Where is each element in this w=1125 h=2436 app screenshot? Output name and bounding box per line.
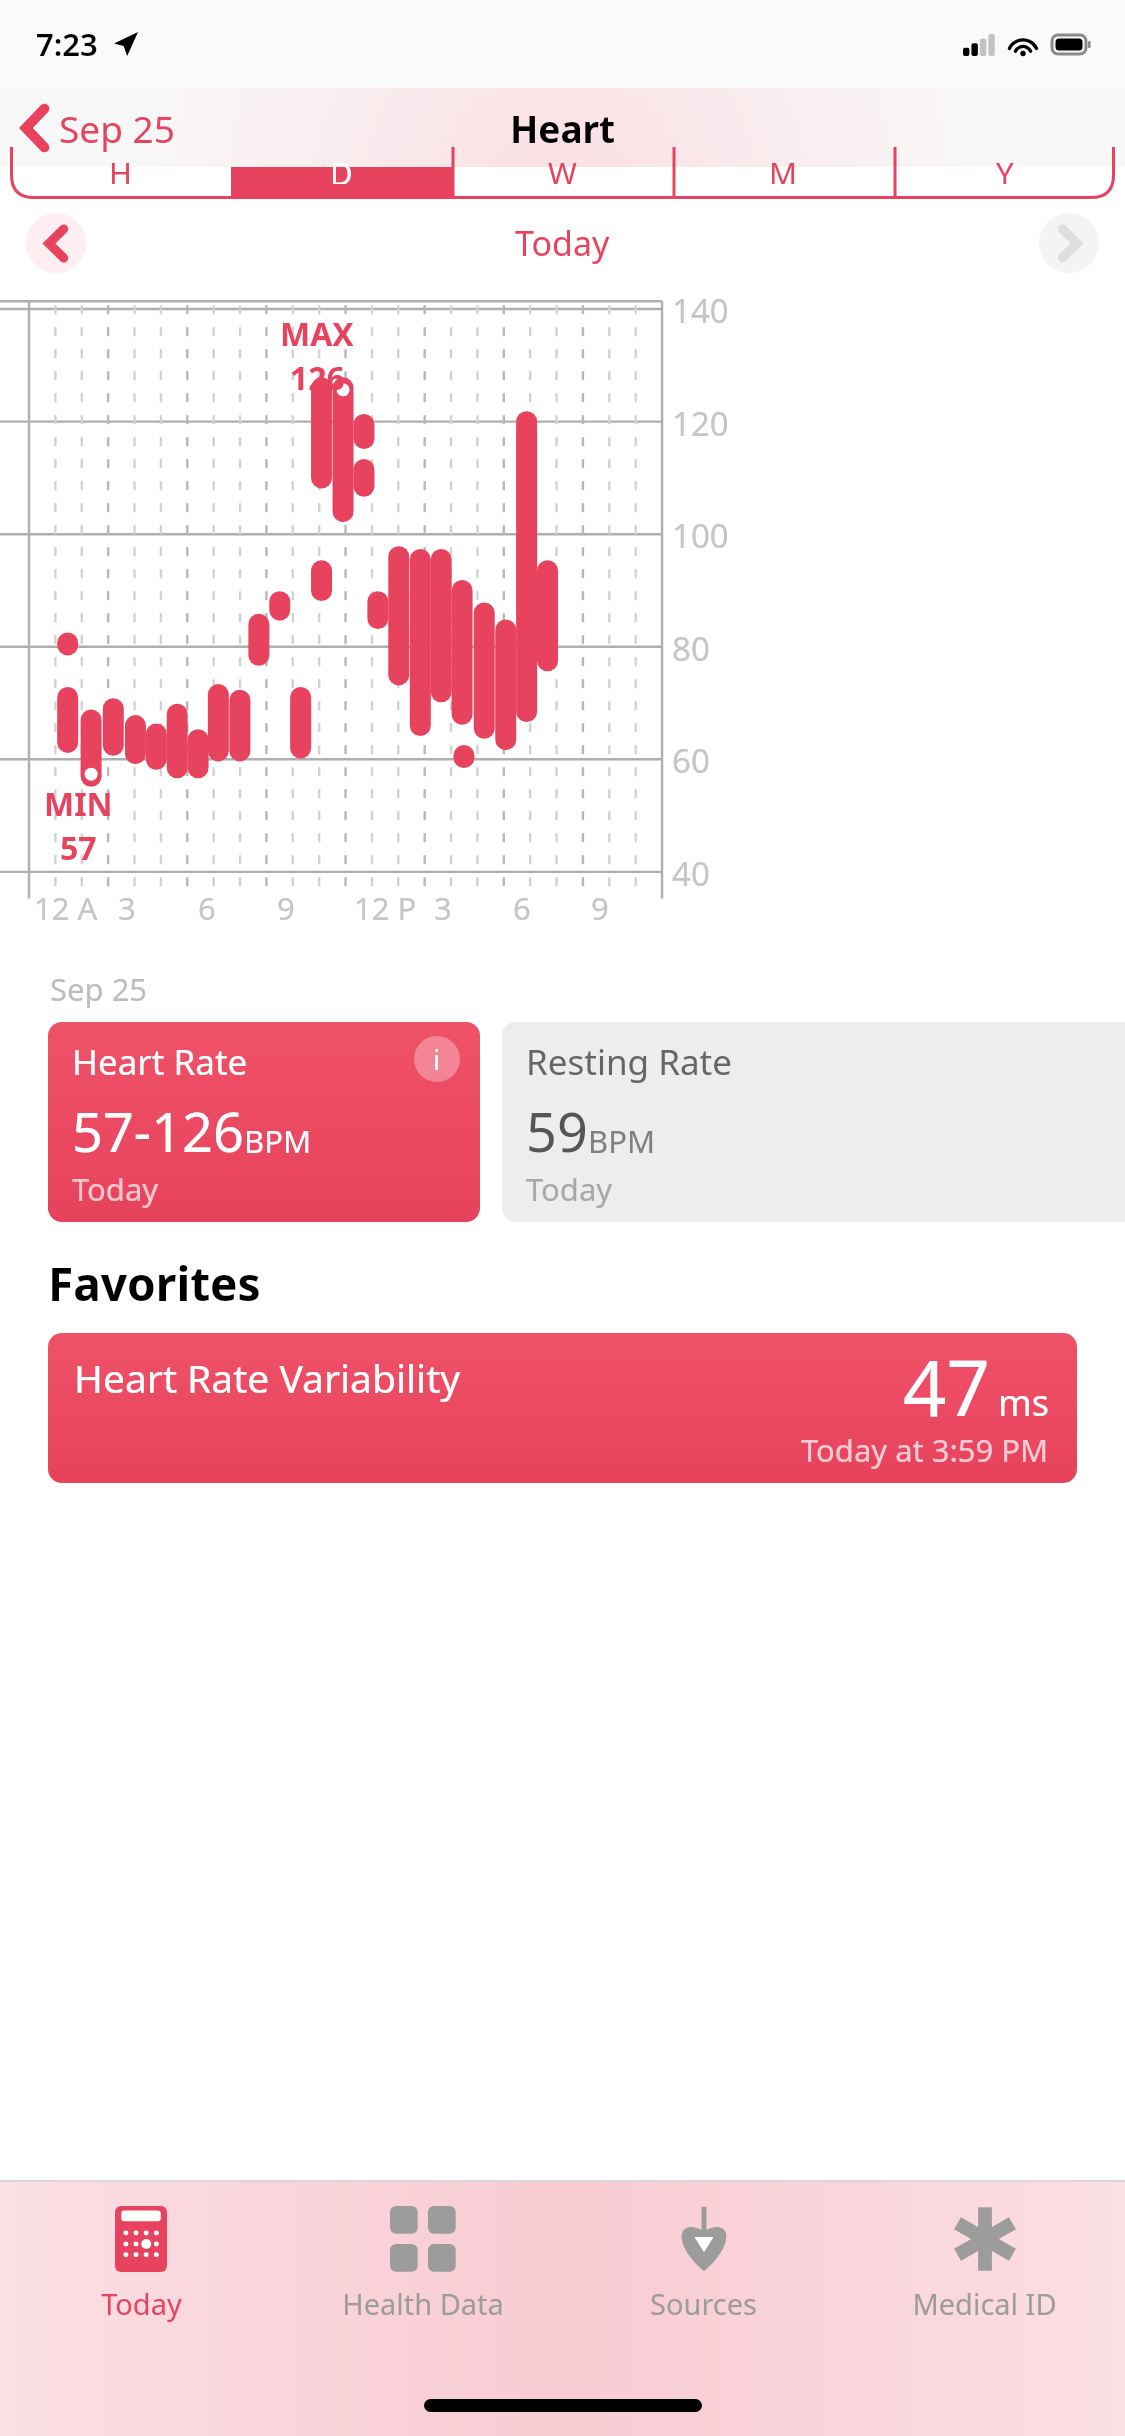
button[interactable]: D <box>231 167 452 199</box>
staticText: Sep 25 <box>50 968 148 1010</box>
staticText: BPM <box>244 1120 312 1162</box>
staticText: W <box>548 152 577 184</box>
staticText: 7:23 <box>36 23 98 65</box>
staticText: 6 <box>513 887 531 929</box>
staticText: 6 <box>198 887 216 929</box>
button[interactable]: Info <box>414 1036 460 1082</box>
staticText: MIN <box>44 782 113 826</box>
staticText: MAX <box>280 312 354 356</box>
staticText: Heart <box>510 103 616 153</box>
button[interactable]: H <box>10 167 231 199</box>
staticText: 80 <box>672 626 710 671</box>
staticText: 47 <box>903 1335 990 1439</box>
staticText: Health Data <box>342 2284 504 2323</box>
staticText: 60 <box>672 738 710 783</box>
staticText: 40 <box>672 851 710 896</box>
staticText: 9 <box>591 887 609 929</box>
button[interactable]: Heart Rate <box>48 1022 480 1222</box>
staticText: 12 A <box>34 887 98 929</box>
staticText: Today <box>526 1168 613 1210</box>
staticText: 3 <box>434 887 452 929</box>
staticText: Today <box>101 2284 182 2323</box>
button[interactable]: Resting Rate <box>502 1022 1125 1222</box>
staticText: D <box>330 152 353 184</box>
staticText: M <box>769 152 798 184</box>
staticText: 3 <box>118 887 136 929</box>
staticText: 126 <box>290 356 345 400</box>
staticText: Heart Rate Variability <box>74 1351 461 1404</box>
staticText: Sep 25 <box>59 103 175 153</box>
staticText: Favorites <box>48 1252 261 1315</box>
staticText: Today <box>515 220 610 266</box>
staticText: i <box>433 1040 441 1078</box>
button[interactable]: Health Data <box>282 2206 563 2323</box>
staticText: Medical ID <box>912 2284 1057 2323</box>
staticText: Resting Rate <box>526 1038 732 1086</box>
staticText: Y <box>996 152 1014 184</box>
staticText: Heart Rate <box>72 1038 248 1086</box>
staticText: 57-126 <box>72 1094 244 1168</box>
staticText: 12 P <box>354 887 417 929</box>
staticText: 59 <box>526 1094 588 1168</box>
staticText: Today at 3:59 PM <box>801 1429 1049 1471</box>
staticText: Today <box>72 1168 159 1210</box>
staticText: BPM <box>588 1120 656 1162</box>
staticText: H <box>109 152 132 184</box>
staticText: 120 <box>672 401 729 446</box>
button[interactable]: Previous day <box>26 213 86 273</box>
staticText: ms <box>998 1378 1049 1427</box>
button[interactable]: W <box>452 167 673 199</box>
staticText: Sources <box>650 2284 757 2323</box>
button[interactable]: Medical ID <box>844 2206 1125 2323</box>
button[interactable]: Sep 25 <box>22 103 175 153</box>
button[interactable]: Today <box>0 2206 282 2323</box>
button[interactable]: Y <box>894 167 1115 199</box>
staticText: 100 <box>672 513 729 558</box>
staticText: 57 <box>60 826 97 870</box>
staticText: 9 <box>277 887 295 929</box>
button[interactable]: M <box>673 167 894 199</box>
button[interactable]: Heart Rate Variability <box>48 1333 1077 1483</box>
button[interactable]: Sources <box>563 2206 844 2323</box>
staticText: 140 <box>672 288 729 333</box>
button[interactable]: Next day <box>1039 213 1099 273</box>
